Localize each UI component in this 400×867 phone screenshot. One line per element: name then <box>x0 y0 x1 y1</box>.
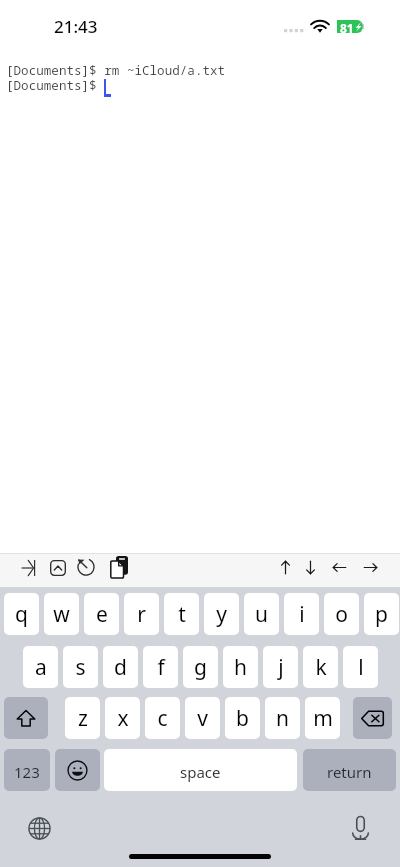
button[interactable]: Tab <box>17 554 39 587</box>
button[interactable]: f <box>143 646 178 688</box>
staticText: j <box>278 653 284 682</box>
button[interactable]: d <box>103 646 138 688</box>
staticText: q <box>15 600 28 629</box>
button[interactable]: o <box>324 593 359 635</box>
staticText: u <box>255 600 268 629</box>
staticText: t <box>178 600 186 629</box>
staticText: x <box>117 704 129 733</box>
staticText: e <box>96 600 108 629</box>
button[interactable]: w <box>44 593 79 635</box>
staticText: l <box>358 653 364 682</box>
staticText: [Documents]$ <box>6 77 97 94</box>
staticText: f <box>157 653 165 682</box>
staticText: k <box>315 653 327 682</box>
staticText: 123 <box>14 762 40 782</box>
staticText: space <box>180 762 221 782</box>
button[interactable]: y <box>204 593 239 635</box>
staticText: 21:43 <box>54 15 98 38</box>
button[interactable]: 123 <box>4 749 50 791</box>
button[interactable]: Arrow up <box>273 554 298 587</box>
button[interactable]: m <box>305 697 340 739</box>
button[interactable]: Arrow right <box>358 554 383 587</box>
button[interactable]: t <box>164 593 199 635</box>
staticText: i <box>299 600 305 629</box>
staticText: [Documents]$ rm ~iCloud/a.txt <box>6 62 226 79</box>
button[interactable]: v <box>185 697 220 739</box>
button[interactable]: Delete <box>353 697 392 739</box>
staticText: v <box>197 704 208 733</box>
button[interactable]: a <box>23 646 58 688</box>
button[interactable]: j <box>263 646 298 688</box>
staticText: b <box>236 704 249 733</box>
button[interactable]: Change keyboard <box>26 815 53 842</box>
button[interactable]: Arrow left <box>327 554 352 587</box>
button[interactable]: e <box>84 593 119 635</box>
button[interactable]: p <box>364 593 399 635</box>
button[interactable]: k <box>303 646 338 688</box>
button[interactable]: b <box>225 697 260 739</box>
button[interactable]: h <box>223 646 258 688</box>
staticText: p <box>375 600 388 629</box>
staticText: h <box>234 653 247 682</box>
button[interactable]: space <box>104 749 297 791</box>
staticText: n <box>276 704 289 733</box>
button[interactable]: return <box>303 749 396 791</box>
button[interactable]: Emoji <box>55 749 100 791</box>
button[interactable]: x <box>105 697 140 739</box>
staticText: d <box>114 653 127 682</box>
button[interactable]: q <box>4 593 39 635</box>
button[interactable]: i <box>284 593 319 635</box>
button[interactable]: s <box>63 646 98 688</box>
button[interactable]: Arrow down <box>298 554 323 587</box>
staticText: c <box>157 704 168 733</box>
button[interactable]: Paste <box>104 554 132 587</box>
staticText: s <box>75 653 86 682</box>
staticText: 81 <box>340 20 354 36</box>
button[interactable]: n <box>265 697 300 739</box>
staticText: a <box>35 653 47 682</box>
staticText: y <box>216 600 227 629</box>
staticText: w <box>53 600 70 629</box>
button[interactable]: Undo <box>73 554 99 587</box>
staticText: return <box>327 762 372 782</box>
button[interactable]: Control <box>46 554 70 587</box>
staticText: r <box>137 600 146 629</box>
staticText: m <box>313 704 333 733</box>
button[interactable]: Dictation <box>347 814 374 841</box>
button[interactable]: Shift <box>4 697 48 739</box>
staticText: o <box>335 600 348 629</box>
button[interactable]: z <box>65 697 100 739</box>
button[interactable]: c <box>145 697 180 739</box>
staticText: g <box>194 653 207 682</box>
staticText: z <box>78 704 88 733</box>
button[interactable]: g <box>183 646 218 688</box>
button[interactable]: r <box>124 593 159 635</box>
button[interactable]: u <box>244 593 279 635</box>
button[interactable]: l <box>343 646 378 688</box>
